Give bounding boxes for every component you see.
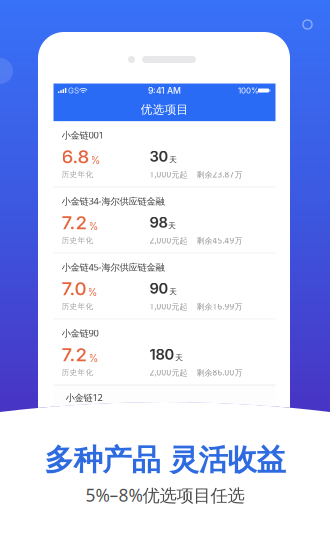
staticText: 98 [149, 214, 167, 231]
staticText: 天 [169, 155, 177, 165]
staticText: % [87, 286, 97, 298]
staticText: 90 [149, 280, 168, 297]
button[interactable]: 小金链45-海尔供应链金融 [53, 253, 275, 318]
staticText: 小金链34-海尔供应链金融 [61, 195, 164, 207]
staticText: 剩余45.49万 [196, 235, 242, 246]
staticText: 历史年化 [61, 170, 93, 179]
staticText: 180 [149, 346, 174, 363]
staticText: 天 [168, 221, 176, 231]
button[interactable]: 小金链90 [53, 319, 275, 384]
staticText: 剩余86.00万 [196, 367, 242, 378]
staticText: 2,000元起 [149, 367, 187, 378]
staticText: % [88, 352, 98, 364]
staticText: 优选项目 [140, 102, 188, 117]
staticText: 历史年化 [61, 368, 93, 377]
staticText: 多种产品 灵活收益 [44, 441, 285, 478]
staticText: 1,000元起 [149, 169, 187, 180]
staticText: GS [68, 86, 79, 95]
staticText: 6.8 [61, 145, 89, 168]
staticText: 剩余23.87万 [196, 169, 242, 180]
button[interactable]: 小金链001 [53, 121, 275, 186]
staticText: 7.0 [61, 277, 86, 300]
staticText: 7.2 [61, 211, 87, 234]
staticText: 5%–8%优选项目任选 [85, 483, 244, 507]
staticText: % [90, 154, 100, 166]
staticText: 历史年化 [61, 302, 93, 311]
staticText: 9:41 AM [148, 85, 181, 96]
staticText: 2,000元起 [149, 235, 187, 246]
staticText: 30 [149, 148, 168, 165]
staticText: 1,000元起 [149, 301, 187, 312]
staticText: 剩余16.99万 [196, 301, 242, 312]
staticText: 天 [169, 287, 177, 297]
staticText: 100% [238, 86, 259, 95]
staticText: 小金链45-海尔供应链金融 [61, 261, 164, 273]
staticText: 小金链90 [61, 327, 98, 339]
staticText: 小金链001 [61, 129, 103, 141]
staticText: % [88, 220, 98, 232]
staticText: 历史年化 [61, 236, 93, 245]
staticText: 7.2 [61, 343, 87, 366]
button[interactable]: 小金链34-海尔供应链金融 [53, 187, 275, 252]
staticText: 天 [175, 353, 183, 363]
staticText: 小金链12 [65, 391, 102, 404]
